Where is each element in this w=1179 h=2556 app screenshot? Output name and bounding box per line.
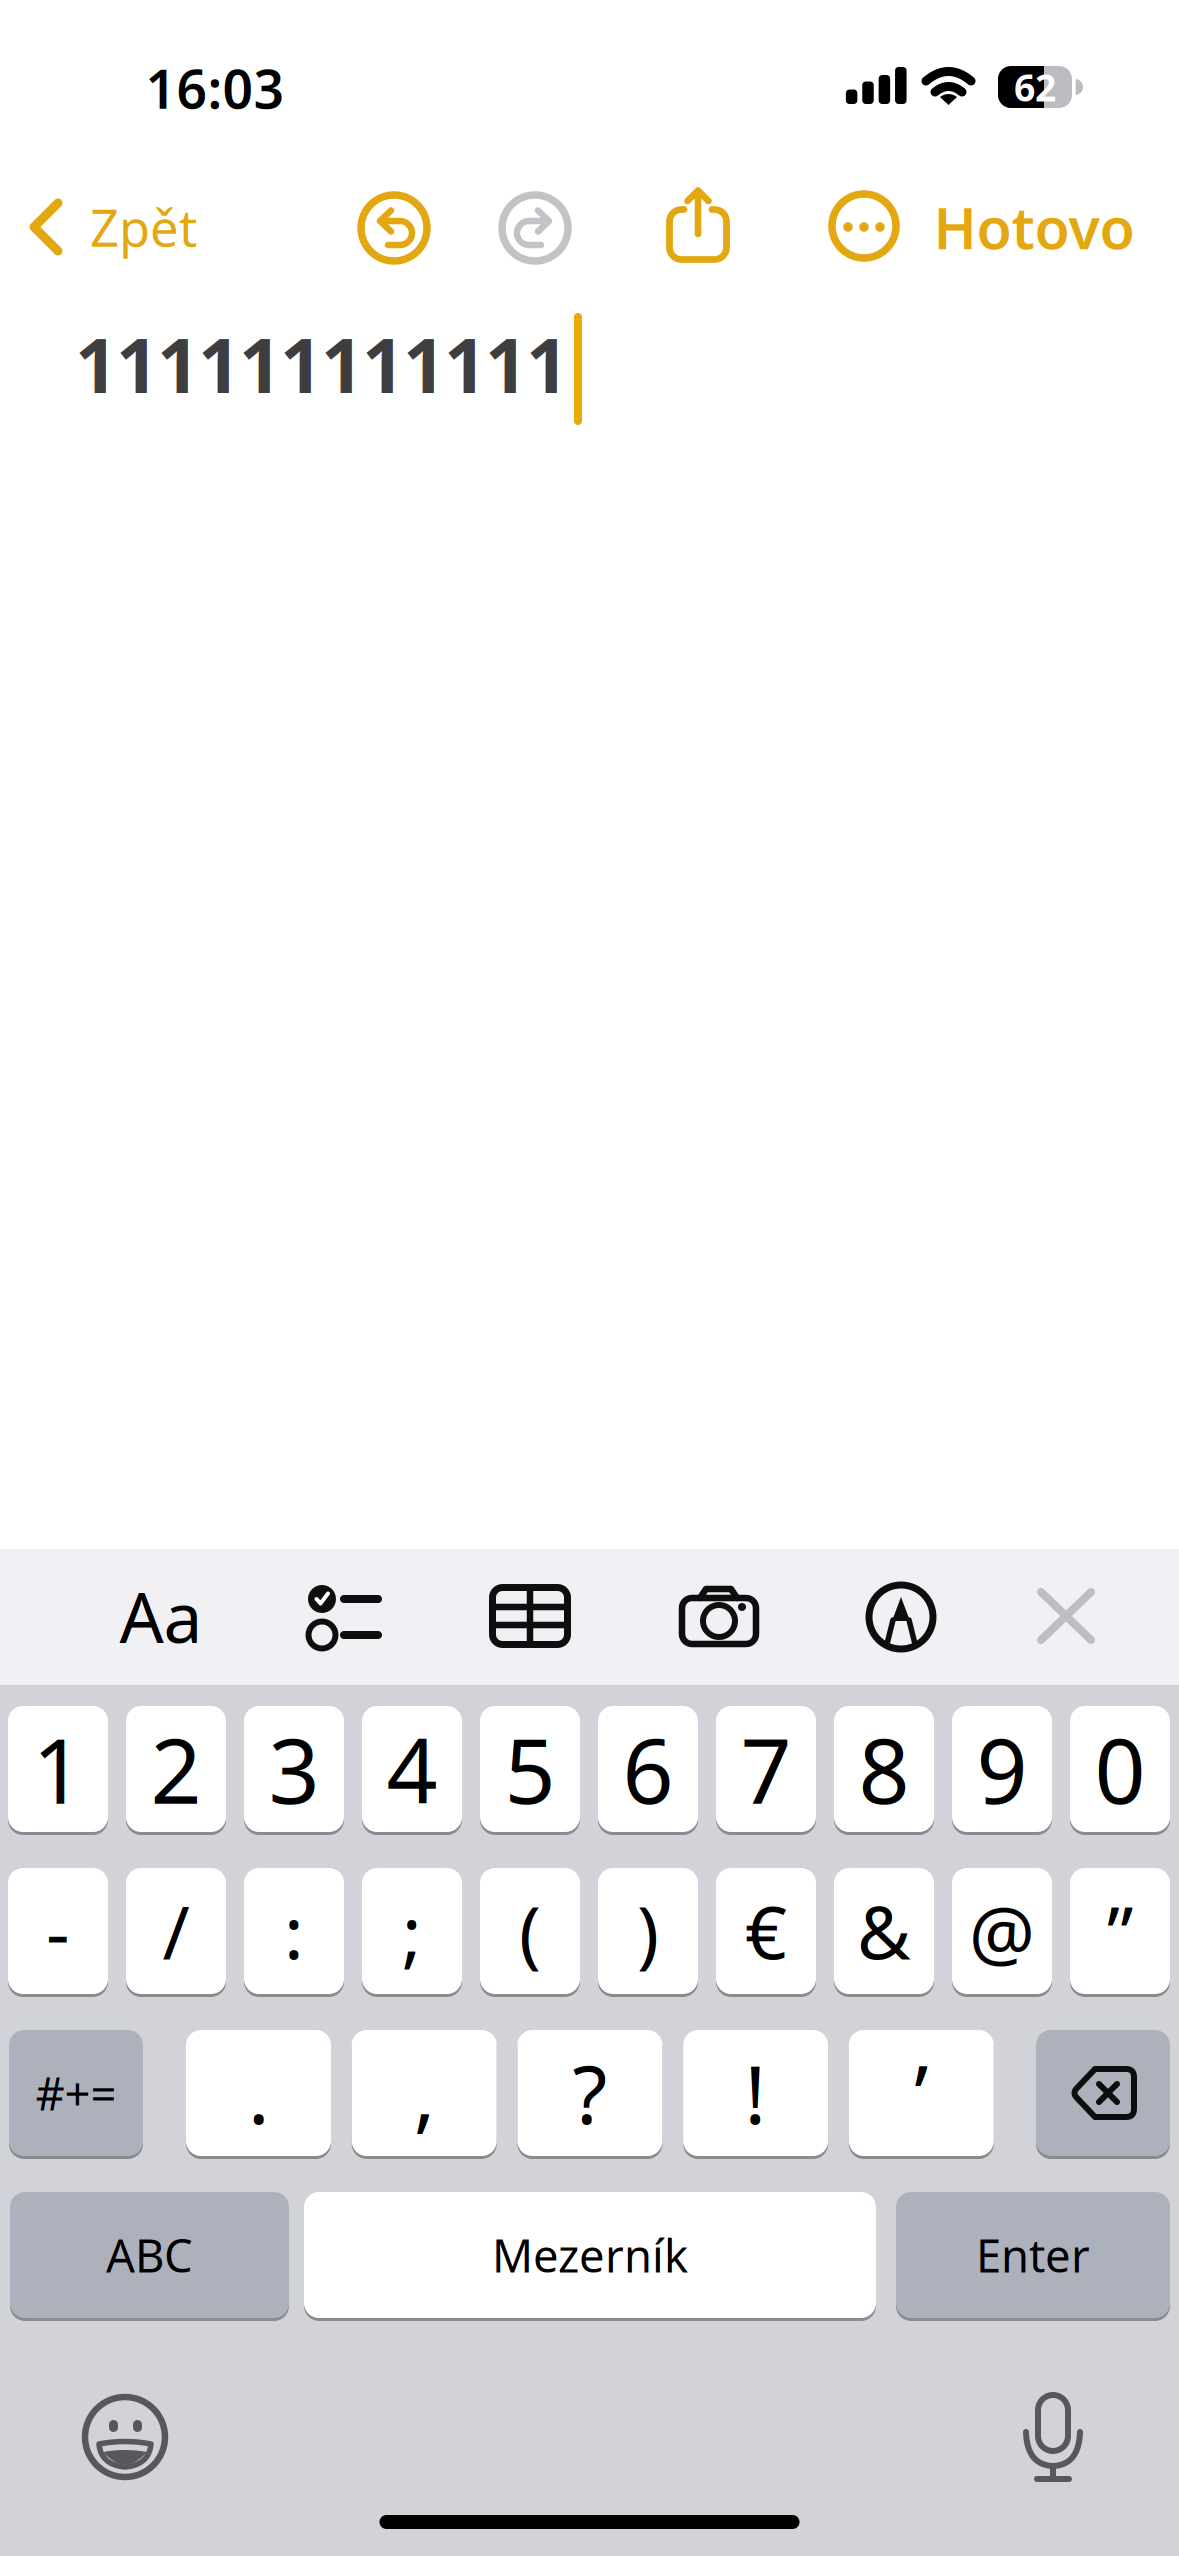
button[interactable]: Redo (497, 190, 573, 266)
button[interactable]: , (352, 2028, 497, 2158)
button[interactable]: Mezerník (304, 2190, 876, 2320)
staticText: 9 (976, 1710, 1027, 1828)
button[interactable]: 7 (716, 1704, 816, 1834)
button[interactable]: : (244, 1866, 344, 1996)
button[interactable]: ” (1070, 1866, 1170, 1996)
staticText: 0 (1094, 1710, 1145, 1828)
staticText: #+= (35, 2063, 116, 2123)
button[interactable]: . (186, 2028, 331, 2158)
button[interactable]: 3 (244, 1704, 344, 1834)
button[interactable]: ? (517, 2028, 662, 2158)
staticText: ’ (914, 2040, 928, 2146)
staticText: ) (637, 1882, 659, 1980)
button[interactable]: Hotovo (933, 189, 1134, 265)
button[interactable]: Checklist (294, 1567, 394, 1667)
staticText: 1 (32, 1710, 83, 1828)
button[interactable]: Table (480, 1566, 580, 1666)
staticText: Zpět (90, 193, 197, 261)
staticText: ABC (106, 2225, 193, 2285)
button[interactable]: / (126, 1866, 226, 1996)
staticText: 7 (740, 1710, 791, 1828)
button[interactable]: More (827, 189, 901, 263)
button[interactable]: Dismiss keyboard (1021, 1571, 1111, 1661)
button[interactable]: - (8, 1866, 108, 1996)
button[interactable]: € (716, 1866, 816, 1996)
staticText: ! (745, 2040, 767, 2146)
staticText: Mezerník (492, 2225, 688, 2285)
button[interactable]: Markup (851, 1567, 951, 1667)
staticText: , (414, 2040, 435, 2146)
staticText: ( (519, 1882, 541, 1980)
button[interactable]: 6 (598, 1704, 698, 1834)
button[interactable]: & (834, 1866, 934, 1996)
staticText: 6 (622, 1710, 673, 1828)
staticText: 16:03 (145, 53, 284, 123)
button[interactable]: Share (660, 182, 736, 266)
button[interactable]: ! (683, 2028, 828, 2158)
staticText: - (46, 1882, 70, 1980)
button[interactable]: 8 (834, 1704, 934, 1834)
staticText: 8 (858, 1710, 909, 1828)
staticText: ; (402, 1882, 422, 1980)
button[interactable]: #+= (9, 2028, 143, 2158)
button[interactable]: 1 (8, 1704, 108, 1834)
staticText: / (162, 1882, 189, 1980)
button[interactable]: Undo (356, 190, 432, 266)
staticText: 2 (150, 1710, 201, 1828)
staticText: 5 (504, 1710, 555, 1828)
button[interactable]: ( (480, 1866, 580, 1996)
staticText: Enter (976, 2225, 1090, 2285)
staticText: 3 (268, 1710, 319, 1828)
staticText: 111111111111 (75, 314, 569, 414)
button[interactable]: @ (952, 1866, 1052, 1996)
button[interactable]: Formatting (101, 1561, 221, 1671)
staticText: Hotovo (933, 189, 1134, 265)
button[interactable]: ; (362, 1866, 462, 1996)
button[interactable]: Camera (669, 1567, 769, 1667)
button[interactable]: 9 (952, 1704, 1052, 1834)
staticText: 4 (386, 1710, 437, 1828)
button[interactable]: Dictation (1013, 2387, 1093, 2487)
staticText: . (248, 2040, 269, 2146)
staticText: Aa (119, 1570, 202, 1662)
button[interactable]: 5 (480, 1704, 580, 1834)
button[interactable]: ABC (10, 2190, 289, 2320)
staticText: : (284, 1882, 304, 1980)
button[interactable]: ’ (849, 2028, 994, 2158)
staticText: 62 (1014, 62, 1056, 112)
button[interactable]: Enter (896, 2190, 1170, 2320)
button[interactable]: Delete (1036, 2028, 1170, 2158)
button[interactable]: 2 (126, 1704, 226, 1834)
button[interactable]: Emoji (75, 2387, 175, 2487)
staticText: ” (1107, 1882, 1133, 1980)
staticText: € (745, 1882, 787, 1980)
button[interactable]: Zpět (28, 185, 204, 269)
button[interactable]: ) (598, 1866, 698, 1996)
button[interactable]: 0 (1070, 1704, 1170, 1834)
staticText: ? (572, 2040, 607, 2146)
button[interactable]: 4 (362, 1704, 462, 1834)
staticText: & (857, 1882, 911, 1980)
staticText: @ (969, 1882, 1035, 1980)
